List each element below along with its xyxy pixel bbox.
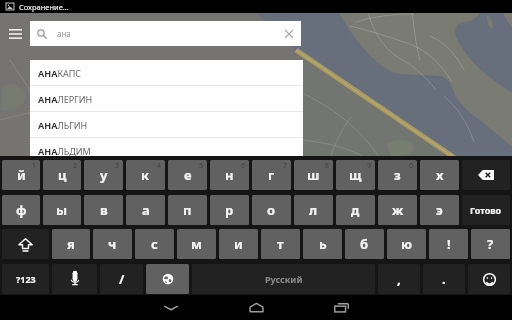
- staticText: а: [142, 201, 150, 219]
- staticText: у: [100, 166, 108, 184]
- staticText: ана: [57, 28, 71, 39]
- staticText: 6: [241, 161, 246, 171]
- staticText: э: [436, 201, 443, 219]
- button[interactable]: ?123: [2, 264, 49, 294]
- staticText: ь: [319, 235, 327, 253]
- button[interactable]: а: [126, 195, 165, 225]
- staticText: 5: [199, 161, 204, 171]
- staticText: 9: [367, 161, 372, 171]
- staticText: б: [360, 235, 369, 253]
- button[interactable]: Voice input: [52, 264, 97, 294]
- staticText: е: [184, 166, 192, 184]
- button[interactable]: Menu: [0, 21, 30, 46]
- button[interactable]: ю: [387, 229, 426, 259]
- button[interactable]: /: [100, 264, 143, 294]
- staticText: ж: [392, 201, 404, 219]
- button[interactable]: АНАКАПС: [30, 60, 303, 85]
- button[interactable]: у: [84, 160, 123, 190]
- button[interactable]: Clear: [279, 21, 299, 46]
- button[interactable]: ь: [303, 229, 342, 259]
- button[interactable]: Emoji: [468, 264, 510, 294]
- button[interactable]: к: [126, 160, 165, 190]
- staticText: ф: [16, 201, 27, 219]
- button[interactable]: ч: [93, 229, 132, 259]
- button[interactable]: т: [261, 229, 300, 259]
- button[interactable]: щ: [336, 160, 375, 190]
- button[interactable]: Backspace: [462, 160, 510, 190]
- button[interactable]: я: [52, 229, 90, 259]
- button[interactable]: АНАЛЬГИН: [30, 112, 303, 137]
- button[interactable]: л: [294, 195, 333, 225]
- button[interactable]: ш: [294, 160, 333, 190]
- staticText: ц: [58, 166, 67, 184]
- button[interactable]: ?: [471, 229, 510, 259]
- button[interactable]: г: [252, 160, 291, 190]
- button[interactable]: Готово: [462, 195, 510, 225]
- staticText: м: [191, 235, 202, 253]
- staticText: АНАЛЬДИМ: [38, 145, 91, 157]
- staticText: с: [151, 235, 158, 253]
- staticText: 4: [157, 161, 162, 171]
- staticText: т: [277, 235, 284, 253]
- staticText: в: [100, 201, 108, 219]
- button[interactable]: й: [2, 160, 40, 190]
- button[interactable]: ы: [43, 195, 81, 225]
- button[interactable]: ф: [2, 195, 40, 225]
- button[interactable]: ,: [378, 264, 420, 294]
- staticText: ш: [307, 166, 320, 184]
- staticText: АНАКАПС: [38, 67, 82, 79]
- staticText: р: [225, 201, 234, 219]
- staticText: .: [442, 270, 446, 288]
- staticText: Готово: [470, 204, 502, 216]
- staticText: 3: [115, 161, 120, 171]
- button[interactable]: х: [420, 160, 459, 190]
- button[interactable]: п: [168, 195, 207, 225]
- staticText: ?: [487, 235, 494, 253]
- staticText: !: [447, 235, 451, 253]
- staticText: х: [436, 166, 444, 184]
- button[interactable]: и: [219, 229, 258, 259]
- button[interactable]: е: [168, 160, 207, 190]
- button[interactable]: .: [423, 264, 465, 294]
- staticText: з: [394, 166, 401, 184]
- staticText: ю: [401, 235, 413, 253]
- button[interactable]: с: [135, 229, 174, 259]
- staticText: ч: [108, 235, 117, 253]
- staticText: ы: [56, 201, 68, 219]
- button[interactable]: ц: [43, 160, 81, 190]
- button[interactable]: Change language: [146, 264, 189, 294]
- staticText: АНАЛЕРГИН: [38, 93, 93, 105]
- button[interactable]: о: [252, 195, 291, 225]
- staticText: 7: [283, 161, 288, 171]
- staticText: Сохранение...: [19, 2, 69, 12]
- staticText: 0: [409, 161, 414, 171]
- button[interactable]: м: [177, 229, 216, 259]
- button[interactable]: АНАЛЬДИМ: [30, 138, 303, 163]
- button[interactable]: Home: [227, 295, 285, 320]
- staticText: Русский: [265, 273, 303, 285]
- staticText: 1: [32, 161, 37, 171]
- button[interactable]: Shift: [2, 229, 49, 259]
- button[interactable]: д: [336, 195, 375, 225]
- staticText: 8: [325, 161, 330, 171]
- button[interactable]: б: [345, 229, 384, 259]
- staticText: н: [225, 166, 234, 184]
- staticText: ,: [397, 270, 401, 288]
- staticText: и: [234, 235, 243, 253]
- staticText: о: [267, 201, 276, 219]
- button[interactable]: Русский: [192, 264, 375, 294]
- button[interactable]: з: [378, 160, 417, 190]
- staticText: п: [183, 201, 192, 219]
- button[interactable]: !: [429, 229, 468, 259]
- button[interactable]: в: [84, 195, 123, 225]
- button[interactable]: Recent apps: [312, 295, 370, 320]
- button[interactable]: н: [210, 160, 249, 190]
- staticText: 2: [73, 161, 78, 171]
- staticText: ?123: [16, 273, 36, 285]
- button[interactable]: АНАЛЕРГИН: [30, 86, 303, 111]
- button[interactable]: Hide keyboard: [142, 295, 200, 320]
- button[interactable]: р: [210, 195, 249, 225]
- button[interactable]: ж: [378, 195, 417, 225]
- staticText: л: [309, 201, 318, 219]
- button[interactable]: э: [420, 195, 459, 225]
